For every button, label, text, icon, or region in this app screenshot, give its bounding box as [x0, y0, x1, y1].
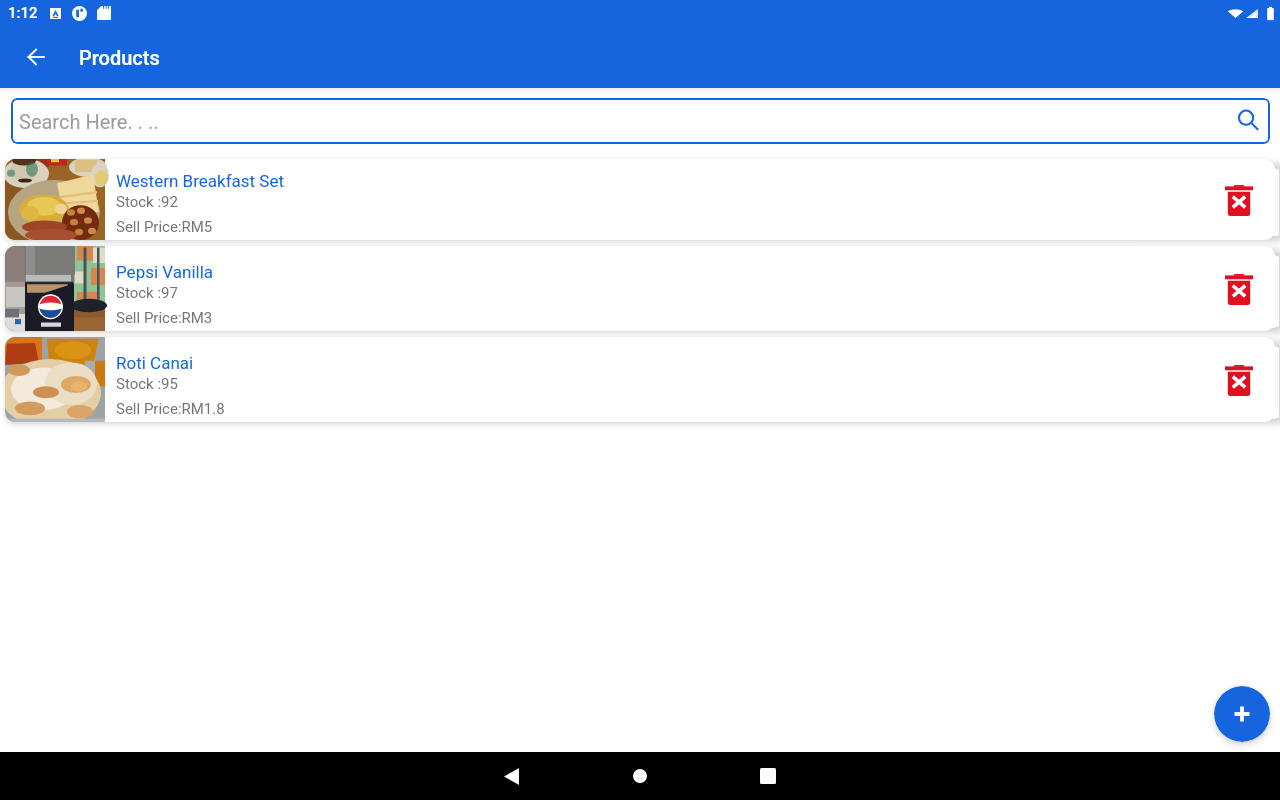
button[interactable]: Delete [1215, 265, 1263, 313]
staticText: Search Here. . .. [19, 110, 159, 133]
button[interactable]: Back [12, 33, 60, 81]
button[interactable]: Delete [1215, 356, 1263, 404]
staticText: Sell Price:RM5 [116, 218, 213, 236]
button[interactable]: Pepsi Vanilla [5, 246, 1275, 331]
button[interactable]: Delete [1215, 176, 1263, 224]
button[interactable]: Search Here. . .. [11, 98, 1270, 144]
staticText: Sell Price:RM1.8 [116, 400, 225, 418]
staticText: Pepsi Vanilla [116, 262, 214, 282]
button[interactable]: Western Breakfast Set [5, 159, 1275, 240]
button[interactable]: Home [576, 752, 704, 800]
staticText: Sell Price:RM3 [116, 309, 213, 327]
button[interactable]: Recents [704, 752, 832, 800]
staticText: Stock :97 [116, 284, 178, 302]
staticText: Stock :92 [116, 193, 178, 211]
staticText: Western Breakfast Set [116, 171, 285, 191]
button[interactable]: Roti Canai [5, 337, 1275, 422]
button[interactable]: Add product [1214, 686, 1270, 742]
staticText: Roti Canai [116, 353, 194, 373]
staticText: Products [79, 46, 160, 69]
staticText: Stock :95 [116, 375, 178, 393]
staticText: 1:12 [8, 4, 38, 22]
button[interactable]: Back [448, 752, 576, 800]
